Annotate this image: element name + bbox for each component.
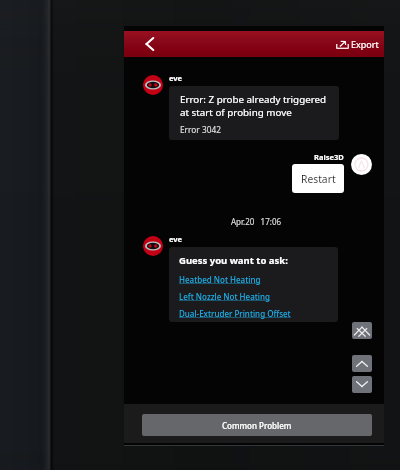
staticText: Heatbed Not Heating <box>179 274 261 285</box>
button[interactable]: Restart <box>292 164 344 193</box>
button[interactable]: Scroll down <box>352 376 372 393</box>
button[interactable]: Export <box>336 31 379 57</box>
staticText: Restart <box>301 172 336 186</box>
staticText: Error: Z probe already triggered at star… <box>180 93 327 119</box>
button[interactable]: Left Nozzle Not Heating <box>179 291 270 302</box>
staticText: Apr.20 17:06 <box>231 216 282 227</box>
staticText: Error 3042 <box>180 124 221 135</box>
button[interactable]: Back <box>132 31 166 57</box>
button[interactable]: Common Problem <box>142 414 372 436</box>
button[interactable]: Dual-Extruder Printing Offset <box>179 308 291 319</box>
button[interactable]: Scroll to top <box>352 322 372 339</box>
staticText: eve <box>169 234 183 244</box>
staticText: Guess you want to ask: <box>179 254 288 267</box>
staticText: Dual-Extruder Printing Offset <box>179 308 291 319</box>
staticText: eve <box>169 73 183 83</box>
staticText: Raise3D <box>314 152 344 162</box>
button[interactable]: Heatbed Not Heating <box>179 274 261 285</box>
staticText: Common Problem <box>222 420 292 431</box>
button[interactable]: Error: Z probe already triggered at star… <box>169 86 339 140</box>
staticText: Left Nozzle Not Heating <box>179 291 270 302</box>
button[interactable]: Scroll up <box>352 355 372 372</box>
staticText: Export <box>351 38 379 50</box>
